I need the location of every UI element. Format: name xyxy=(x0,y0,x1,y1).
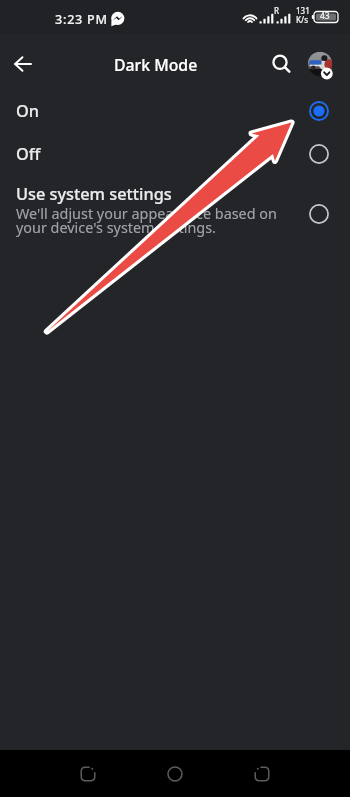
button[interactable]: Recents xyxy=(241,753,283,795)
staticText: 131 xyxy=(296,5,310,16)
button[interactable]: Off xyxy=(0,135,350,178)
staticText: 43 xyxy=(320,10,330,22)
button[interactable]: Back xyxy=(7,48,39,80)
staticText: R xyxy=(274,5,280,16)
button[interactable]: Use system settings xyxy=(0,175,350,255)
staticText: Dark Mode xyxy=(114,54,198,76)
button[interactable]: Back xyxy=(67,753,109,795)
button[interactable]: Account xyxy=(304,46,338,80)
staticText: 3:23 PM xyxy=(55,11,108,28)
staticText: Off xyxy=(16,143,41,165)
staticText: We'll adjust your appearance based on yo… xyxy=(16,204,277,237)
button[interactable]: Home xyxy=(154,753,196,795)
staticText: Use system settings xyxy=(16,183,172,205)
button[interactable]: On xyxy=(0,92,350,135)
button[interactable]: Search xyxy=(266,48,298,80)
staticText: On xyxy=(16,100,39,122)
staticText: K/s xyxy=(296,14,309,25)
